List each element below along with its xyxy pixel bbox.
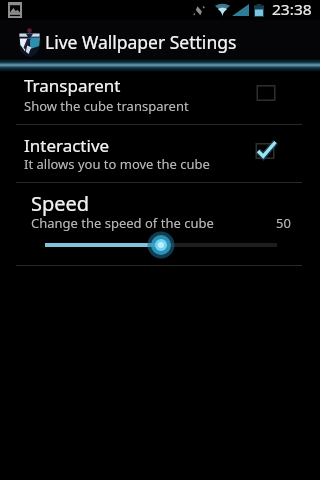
button[interactable]: Transparent bbox=[0, 69, 320, 124]
staticText: 50 bbox=[276, 214, 291, 232]
staticText: 23:38 bbox=[272, 0, 312, 18]
button[interactable]: Speed slider bbox=[0, 230, 320, 260]
staticText: Transparent bbox=[24, 74, 121, 97]
button[interactable]: Speed bbox=[0, 183, 320, 265]
other: Checked bbox=[252, 139, 278, 163]
staticText: Change the speed of the cube bbox=[31, 214, 214, 232]
button[interactable]: Interactive bbox=[0, 125, 320, 182]
other: Unchecked bbox=[253, 81, 279, 105]
staticText: Interactive bbox=[24, 134, 110, 157]
staticText: Live Wallpaper Settings bbox=[45, 30, 237, 54]
staticText: It allows you to move the cube bbox=[24, 155, 210, 173]
staticText: Speed bbox=[31, 190, 90, 217]
staticText: Show the cube transparent bbox=[24, 97, 189, 115]
